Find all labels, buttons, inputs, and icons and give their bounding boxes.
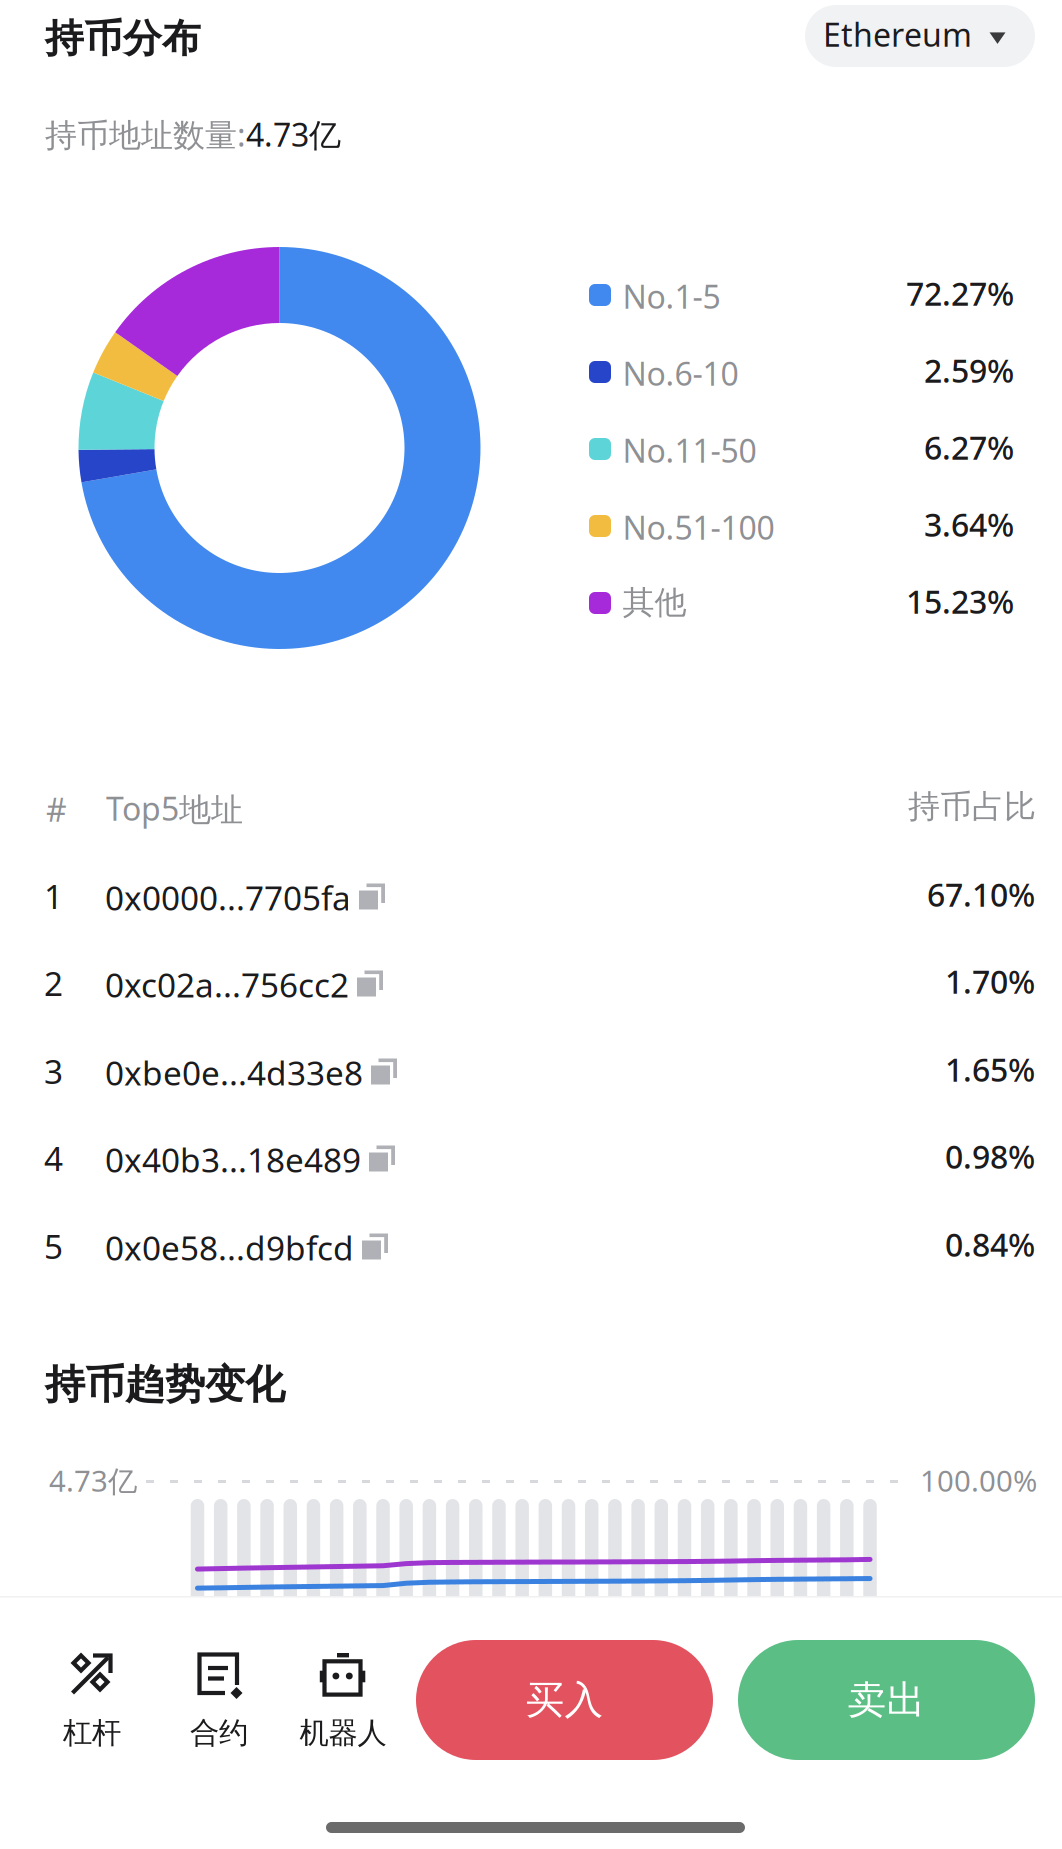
button[interactable]: Copy address <box>371 1050 397 1084</box>
staticText: 3.64% <box>924 503 1014 545</box>
staticText: 3 <box>44 1049 63 1093</box>
staticText: 买入 <box>525 1676 603 1724</box>
staticText: 15.23% <box>906 580 1014 622</box>
button[interactable]: Copy address <box>362 1225 388 1259</box>
staticText: 合约 <box>190 1715 248 1751</box>
button[interactable]: 卖出 <box>738 1640 1035 1760</box>
staticText: 100.00% <box>920 1461 1037 1500</box>
staticText: 持币分布 <box>45 15 201 62</box>
button[interactable]: 买入 <box>416 1640 713 1760</box>
staticText: 0.84% <box>945 1223 1035 1265</box>
staticText: Ethereum <box>823 13 972 55</box>
staticText: 72.27% <box>906 272 1014 314</box>
staticText: 其他 <box>622 583 686 622</box>
staticText: 1.65% <box>945 1048 1035 1090</box>
staticText: 6.27% <box>924 426 1014 468</box>
staticText: 0x0e58...d9bfcd <box>105 1225 354 1270</box>
staticText: No.1-5 <box>622 275 720 317</box>
staticText: 持币趋势变化 <box>45 1360 285 1409</box>
button[interactable]: Copy address <box>359 875 385 909</box>
staticText: 0xbe0e...4d33e8 <box>105 1050 363 1095</box>
staticText: # <box>46 788 67 830</box>
staticText: 机器人 <box>299 1715 386 1751</box>
staticText: 4.73亿 <box>246 113 341 155</box>
staticText: 67.10% <box>927 873 1035 915</box>
staticText: 5 <box>44 1224 63 1268</box>
button[interactable]: 杠杆 <box>32 1652 152 1748</box>
staticText: 4.73亿 <box>49 1461 137 1500</box>
staticText: No.11-50 <box>622 429 756 471</box>
staticText: 1 <box>44 874 63 918</box>
staticText: No.51-100 <box>622 506 774 548</box>
button[interactable]: Ethereum <box>805 5 1035 67</box>
staticText: 0xc02a...756cc2 <box>105 962 349 1007</box>
staticText: 持币地址数量: <box>45 113 246 155</box>
staticText: No.6-10 <box>622 352 738 394</box>
button[interactable]: Copy address <box>369 1137 395 1171</box>
button[interactable]: Copy address <box>357 962 383 996</box>
button[interactable]: 机器人 <box>283 1652 403 1748</box>
staticText: 4 <box>44 1136 63 1180</box>
staticText: 持币占比 <box>908 787 1036 826</box>
staticText: 0.98% <box>945 1135 1035 1177</box>
staticText: 杠杆 <box>63 1715 121 1751</box>
staticText: 2 <box>44 961 63 1005</box>
staticText: 0x0000...7705fa <box>105 875 351 920</box>
staticText: Top5地址 <box>106 787 243 830</box>
button[interactable]: 合约 <box>159 1652 279 1748</box>
staticText: 2.59% <box>924 349 1014 391</box>
staticText: 卖出 <box>847 1676 925 1724</box>
staticText: 0x40b3...18e489 <box>105 1137 361 1182</box>
staticText: 1.70% <box>945 960 1035 1002</box>
